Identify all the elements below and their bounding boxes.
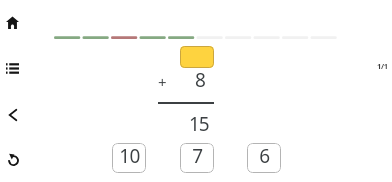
staticText: 1/1: [377, 61, 388, 71]
button[interactable]: Restart: [2, 148, 24, 170]
staticText: 6: [259, 143, 270, 169]
button[interactable]: Home: [1, 11, 23, 33]
staticText: 15: [189, 111, 209, 131]
button[interactable]: Answer slot: [180, 46, 214, 68]
staticText: 10: [119, 143, 140, 169]
staticText: 8: [195, 67, 206, 87]
button[interactable]: Back: [2, 104, 24, 126]
button[interactable]: 10: [112, 143, 146, 173]
button[interactable]: Lessons: [1, 57, 23, 79]
staticText: 7: [192, 143, 203, 169]
button[interactable]: 7: [180, 143, 214, 173]
staticText: +: [158, 72, 167, 92]
button[interactable]: 6: [247, 143, 281, 173]
